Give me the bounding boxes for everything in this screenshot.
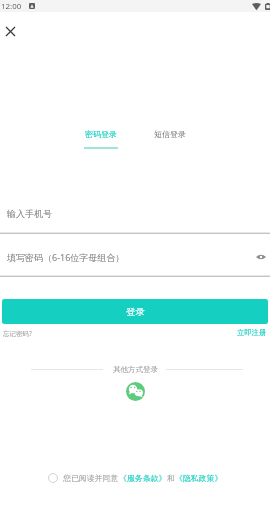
button[interactable]: WeChat login	[126, 382, 145, 401]
button[interactable]: 密码登录	[84, 129, 118, 149]
staticText: 短信登录	[154, 129, 186, 139]
staticText: 输入手机号	[7, 208, 52, 219]
staticText: 其他方式登录	[113, 365, 158, 374]
button[interactable]: 短信登录	[154, 129, 186, 139]
staticText: 密码登录	[85, 129, 117, 139]
button[interactable]: 《隐私政策》	[175, 473, 223, 483]
button[interactable]: Agree to terms	[48, 473, 58, 483]
button[interactable]: 忘记密码?	[3, 329, 32, 338]
button[interactable]: 《服务条款》	[119, 473, 167, 483]
button[interactable]: 立即注册	[237, 328, 267, 337]
button[interactable]: 登录	[2, 299, 268, 324]
staticText: 您已阅读并同意	[63, 473, 119, 483]
staticText: 和	[167, 473, 175, 483]
button[interactable]: Show password	[253, 249, 269, 265]
staticText: 填写密码（6-16位字母组合）	[7, 251, 125, 263]
staticText: 立即注册	[237, 328, 267, 337]
staticText: 登录	[126, 306, 145, 318]
staticText: 忘记密码?	[3, 329, 32, 338]
button[interactable]: Close	[1, 22, 20, 41]
staticText: 12:00	[1, 1, 22, 12]
